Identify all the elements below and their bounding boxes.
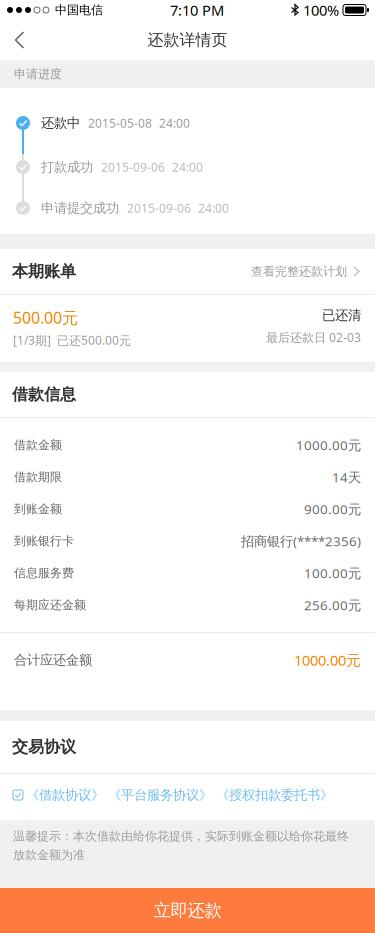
button[interactable]: 返回 bbox=[0, 20, 43, 60]
staticText: 温馨提示：本次借款由给你花提供，实际到账金额以给你花最终 bbox=[13, 829, 349, 844]
staticText: 打款成功 bbox=[41, 159, 93, 175]
staticText: 借款信息 bbox=[12, 385, 76, 404]
staticText: 招商银行(****2356) bbox=[241, 532, 361, 550]
staticText: 256.00元 bbox=[304, 596, 361, 614]
staticText: 500.00元 bbox=[13, 307, 78, 328]
staticText: 24:00 bbox=[198, 200, 229, 216]
button[interactable]: 立即还款 bbox=[0, 888, 375, 933]
staticText: 已还清 bbox=[322, 307, 361, 323]
staticText: 2015-05-08 bbox=[88, 115, 152, 131]
staticText: 900.00元 bbox=[304, 500, 361, 518]
staticText: 中国电信 bbox=[55, 3, 103, 17]
staticText: 交易协议 bbox=[12, 737, 76, 757]
staticText: 查看完整还款计划 bbox=[251, 264, 347, 279]
staticText: 14天 bbox=[332, 468, 361, 486]
staticText: 24:00 bbox=[172, 159, 203, 175]
staticText: 借款金额 bbox=[14, 438, 62, 452]
staticText: 到账金额 bbox=[14, 502, 62, 516]
staticText: 立即还款 bbox=[153, 900, 221, 921]
staticText: 放款金额为准 bbox=[13, 848, 85, 862]
staticText: [1/3期] 已还500.00元 bbox=[13, 332, 131, 348]
staticText: 合计应还金额 bbox=[14, 652, 92, 668]
staticText: 1000.00元 bbox=[296, 436, 361, 454]
staticText: 24:00 bbox=[159, 115, 190, 131]
staticText: 申请进度 bbox=[14, 67, 62, 81]
staticText: 还款详情页 bbox=[147, 30, 227, 50]
staticText: 最后还款日 02-03 bbox=[266, 329, 361, 345]
staticText: 还款中 bbox=[41, 115, 80, 131]
button[interactable]: 本期账单 bbox=[0, 249, 375, 294]
staticText: 100% bbox=[303, 0, 339, 20]
staticText: 7:10 PM bbox=[170, 0, 224, 20]
button[interactable]: 《借款协议》 《平台服务协议》 《授权扣款委托书》 bbox=[0, 784, 375, 806]
staticText: 《借款协议》 《平台服务协议》 《授权扣款委托书》 bbox=[26, 787, 333, 803]
staticText: 到账银行卡 bbox=[14, 534, 74, 548]
staticText: 2015-09-06 bbox=[127, 200, 191, 216]
staticText: 本期账单 bbox=[12, 262, 76, 281]
staticText: 申请提交成功 bbox=[41, 200, 119, 216]
staticText: 每期应还金额 bbox=[14, 598, 86, 612]
staticText: 1000.00元 bbox=[294, 650, 361, 670]
staticText: 信息服务费 bbox=[14, 566, 74, 580]
staticText: 2015-09-06 bbox=[101, 159, 165, 175]
staticText: 借款期限 bbox=[14, 470, 62, 484]
staticText: 100.00元 bbox=[304, 564, 361, 582]
